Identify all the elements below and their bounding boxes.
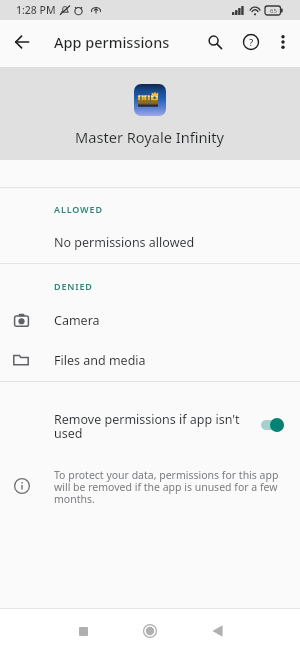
button[interactable]: Recents	[63, 611, 103, 650]
button[interactable]: Help	[234, 25, 268, 59]
button[interactable]: Files and media	[0, 340, 300, 380]
staticText: No permissions allowed	[54, 234, 195, 251]
staticText: DENIED	[54, 280, 93, 292]
staticText: 1:28 PM	[16, 3, 56, 17]
staticText: Remove permissions if app isn't used	[54, 411, 240, 442]
button[interactable]: Back	[197, 611, 237, 650]
button[interactable]: No permissions allowed	[0, 219, 300, 266]
staticText: ?	[249, 36, 254, 49]
staticText: ALLOWED	[54, 203, 103, 215]
button[interactable]: Back	[4, 24, 40, 60]
button[interactable]: Search	[198, 24, 234, 60]
button[interactable]: More options	[268, 27, 298, 57]
button[interactable]: Remove permissions if app isn't used	[0, 398, 300, 454]
button[interactable]: Camera	[0, 300, 300, 340]
staticText: 65	[270, 7, 277, 15]
staticText: App permissions	[54, 32, 170, 52]
staticText: Master Royale Infinity	[75, 127, 225, 147]
staticText: To protect your data, permissions for th…	[54, 468, 284, 506]
staticText: Files and media	[54, 352, 146, 369]
button[interactable]: Home	[130, 611, 170, 650]
staticText: Camera	[54, 312, 100, 329]
